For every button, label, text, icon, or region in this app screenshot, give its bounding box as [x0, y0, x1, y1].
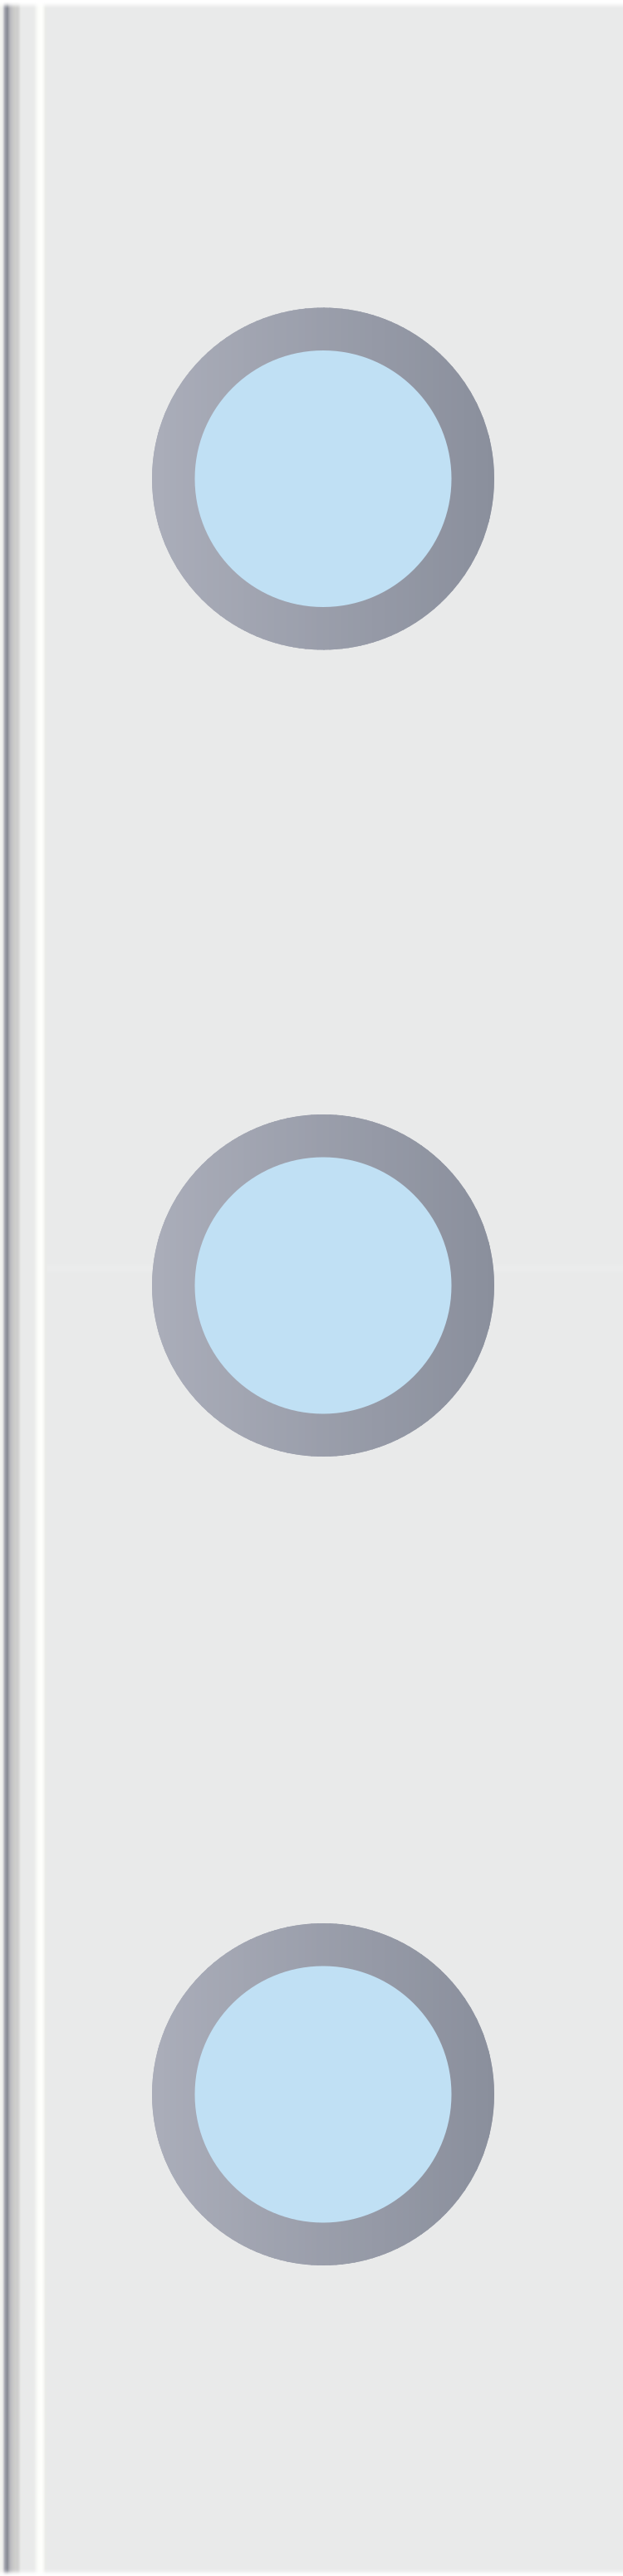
button[interactable]: Option 2: [152, 1114, 494, 1457]
button[interactable]: Option 1: [152, 308, 494, 650]
button[interactable]: Option 3: [152, 1923, 494, 2265]
